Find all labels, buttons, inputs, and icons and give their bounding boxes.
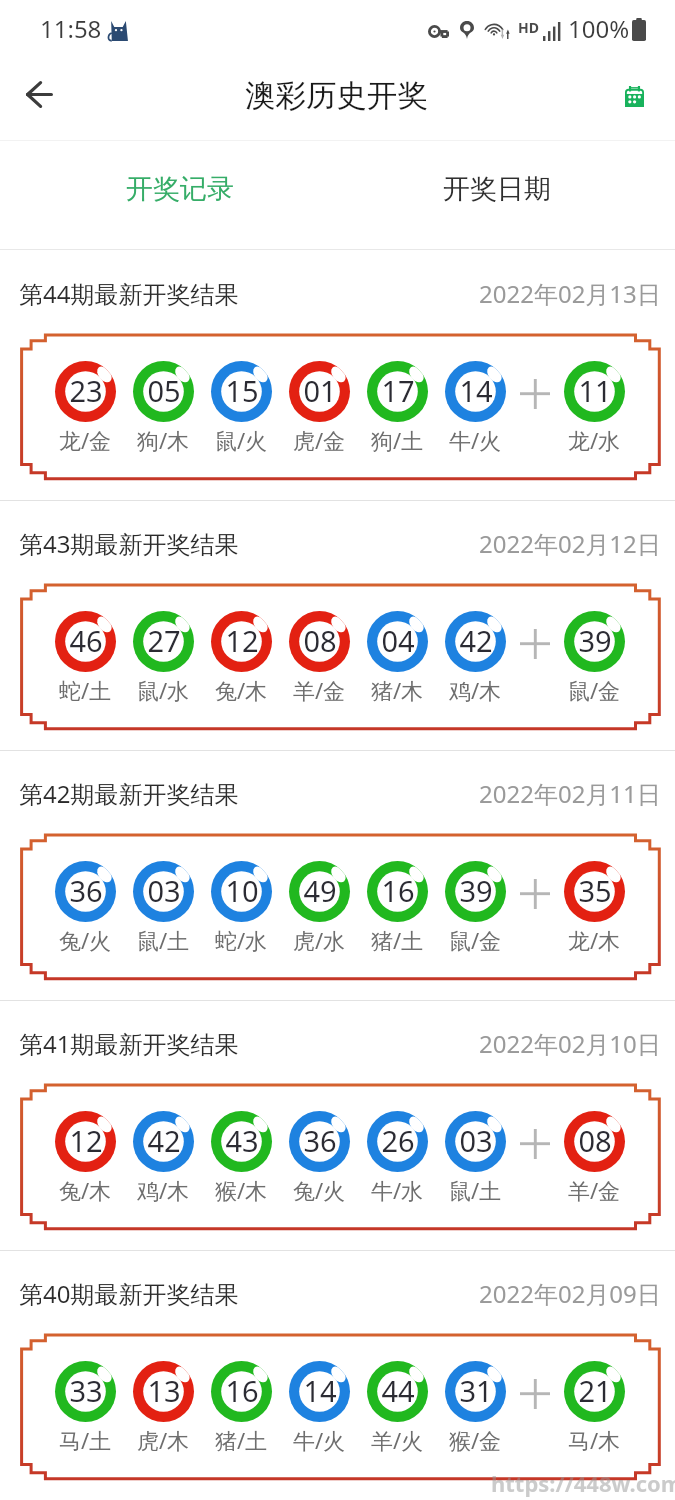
staticText: 05 xyxy=(147,371,181,410)
staticText: 鼠/土 xyxy=(133,925,193,955)
staticText: 12 xyxy=(225,621,259,660)
staticText: 狗/土 xyxy=(367,425,427,455)
staticText: 16 xyxy=(225,1371,259,1410)
staticText: 03 xyxy=(147,871,181,910)
staticText: 兔/火 xyxy=(289,1175,349,1205)
staticText: 羊/金 xyxy=(564,1175,624,1205)
staticText: 猴/金 xyxy=(445,1425,505,1455)
staticText: 开奖日期 xyxy=(443,172,551,206)
staticText: 42 xyxy=(147,1121,181,1160)
staticText: 第43期最新开奖结果 xyxy=(19,527,239,560)
staticText: 虎/金 xyxy=(289,425,349,455)
staticText: 100% xyxy=(568,12,630,45)
staticText: 11 xyxy=(578,371,612,410)
staticText: 蛇/土 xyxy=(55,675,115,705)
staticText: 虎/水 xyxy=(289,925,349,955)
staticText: 36 xyxy=(69,871,103,910)
staticText: 17 xyxy=(381,371,415,410)
staticText: 第41期最新开奖结果 xyxy=(19,1027,239,1060)
staticText: 03 xyxy=(459,1121,493,1160)
staticText: 2022年02月13日 xyxy=(479,277,661,310)
staticText: 15 xyxy=(225,371,259,410)
staticText: 39 xyxy=(578,621,612,660)
staticText: 43 xyxy=(225,1121,259,1160)
staticText: 兔/火 xyxy=(55,925,115,955)
staticText: 27 xyxy=(147,621,181,660)
staticText: 01 xyxy=(303,371,337,410)
staticText: 鼠/火 xyxy=(211,425,271,455)
staticText: 龙/金 xyxy=(55,425,115,455)
staticText: 猪/土 xyxy=(211,1425,271,1455)
button[interactable]: Calendar xyxy=(600,62,675,140)
button[interactable]: 开奖日期 xyxy=(338,141,655,249)
staticText: 04 xyxy=(381,621,415,660)
staticText: 08 xyxy=(303,621,337,660)
button[interactable]: 第43期最新开奖结果 xyxy=(0,500,675,750)
staticText: 44 xyxy=(381,1371,415,1410)
staticText: 马/木 xyxy=(564,1425,624,1455)
staticText: https://448w.com xyxy=(491,1468,675,1498)
staticText: HD xyxy=(518,18,539,37)
button[interactable]: 第44期最新开奖结果 xyxy=(0,250,675,500)
staticText: 2022年02月11日 xyxy=(479,777,661,810)
staticText: 马/土 xyxy=(55,1425,115,1455)
staticText: 猪/木 xyxy=(367,675,427,705)
staticText: 23 xyxy=(69,371,103,410)
staticText: 46 xyxy=(69,621,103,660)
button[interactable]: 开奖记录 xyxy=(21,141,338,249)
staticText: 羊/金 xyxy=(289,675,349,705)
staticText: 2022年02月10日 xyxy=(479,1027,661,1060)
staticText: 牛/水 xyxy=(367,1175,427,1205)
staticText: 36 xyxy=(303,1121,337,1160)
staticText: 21 xyxy=(578,1371,612,1410)
staticText: 26 xyxy=(381,1121,415,1160)
staticText: 2022年02月09日 xyxy=(479,1277,661,1310)
staticText: 10 xyxy=(225,871,259,910)
staticText: 第40期最新开奖结果 xyxy=(19,1277,239,1310)
staticText: 鼠/水 xyxy=(133,675,193,705)
staticText: 33 xyxy=(69,1371,103,1410)
staticText: 12 xyxy=(69,1121,103,1160)
button[interactable]: 第40期最新开奖结果 xyxy=(0,1250,675,1500)
staticText: 猴/木 xyxy=(211,1175,271,1205)
staticText: 羊/火 xyxy=(367,1425,427,1455)
staticText: 39 xyxy=(459,871,493,910)
staticText: 08 xyxy=(578,1121,612,1160)
staticText: 猪/土 xyxy=(367,925,427,955)
staticText: 兔/木 xyxy=(211,675,271,705)
staticText: 龙/水 xyxy=(564,425,624,455)
staticText: 牛/火 xyxy=(289,1425,349,1455)
staticText: 鼠/金 xyxy=(445,925,505,955)
staticText: 开奖记录 xyxy=(126,172,234,206)
staticText: 14 xyxy=(303,1371,337,1410)
staticText: 牛/火 xyxy=(445,425,505,455)
staticText: 澳彩历史开奖 xyxy=(245,77,428,115)
staticText: 31 xyxy=(459,1371,493,1410)
staticText: 13 xyxy=(147,1371,181,1410)
staticText: 鸡/木 xyxy=(133,1175,193,1205)
staticText: 2022年02月12日 xyxy=(479,527,661,560)
button[interactable]: 第41期最新开奖结果 xyxy=(0,1000,675,1250)
staticText: 第44期最新开奖结果 xyxy=(19,277,239,310)
button[interactable]: Back xyxy=(0,62,78,140)
staticText: 16 xyxy=(381,871,415,910)
staticText: 49 xyxy=(303,871,337,910)
staticText: 鼠/金 xyxy=(564,675,624,705)
staticText: 龙/木 xyxy=(564,925,624,955)
staticText: 兔/木 xyxy=(55,1175,115,1205)
staticText: 42 xyxy=(459,621,493,660)
staticText: 第42期最新开奖结果 xyxy=(19,777,239,810)
button[interactable]: 第42期最新开奖结果 xyxy=(0,750,675,1000)
staticText: 鸡/木 xyxy=(445,675,505,705)
staticText: 35 xyxy=(578,871,612,910)
staticText: 虎/木 xyxy=(133,1425,193,1455)
staticText: 狗/木 xyxy=(133,425,193,455)
staticText: 14 xyxy=(459,371,493,410)
staticText: 11:58 xyxy=(40,12,102,45)
staticText: 蛇/水 xyxy=(211,925,271,955)
staticText: 鼠/土 xyxy=(445,1175,505,1205)
